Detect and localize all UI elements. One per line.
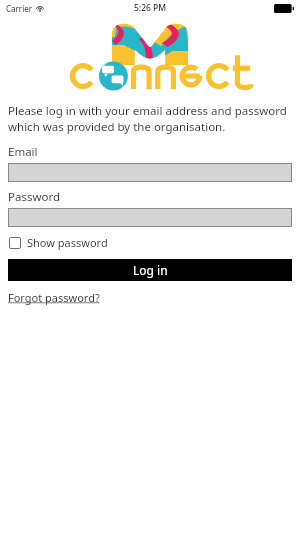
staticText: 5:26 PM [134,2,167,14]
staticText: Log in [133,262,168,278]
button[interactable]: Log in [8,259,292,281]
staticText: Password [8,189,61,205]
button[interactable]: Show password [8,235,108,250]
staticText: Email [8,144,38,160]
button[interactable] [8,163,292,182]
staticText: Carrier [6,3,33,14]
button[interactable]: Forgot password? [8,290,100,305]
button[interactable] [8,208,292,227]
staticText: Show password [27,235,108,250]
staticText: Please log in with your email address an… [8,103,292,134]
staticText: Forgot password? [8,290,100,305]
